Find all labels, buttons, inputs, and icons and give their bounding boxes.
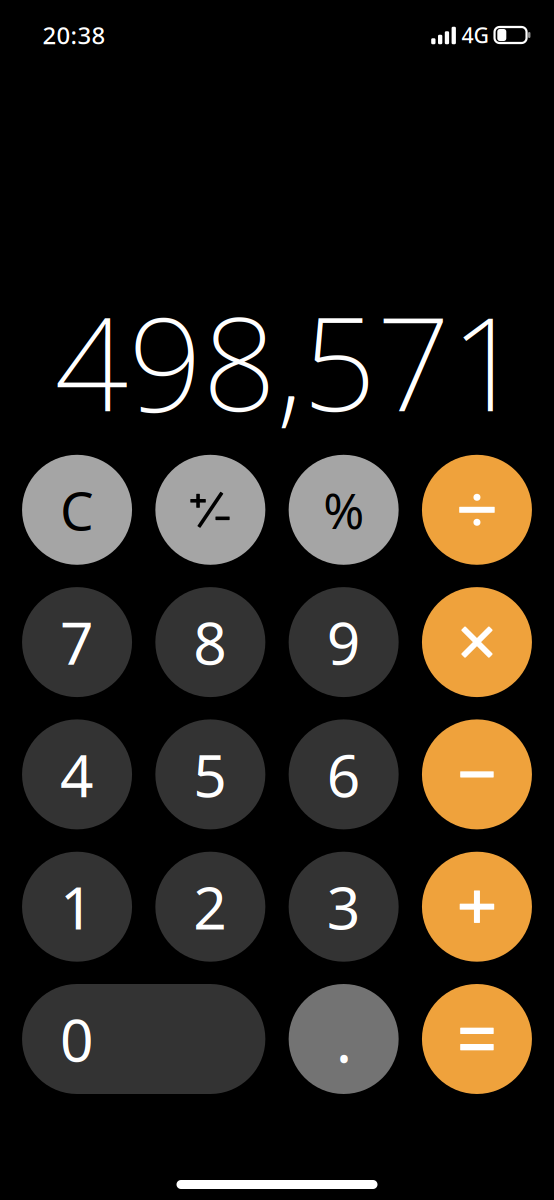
- button[interactable]: Divide: [422, 455, 532, 565]
- staticText: 0: [60, 1000, 94, 1078]
- staticText: 3: [327, 868, 361, 946]
- button[interactable]: 7: [22, 587, 132, 697]
- button[interactable]: Plus minus: [155, 455, 265, 565]
- staticText: 498,571: [54, 275, 524, 447]
- button[interactable]: 3: [289, 852, 399, 962]
- staticText: 7: [60, 603, 94, 681]
- button[interactable]: C: [22, 455, 132, 565]
- button[interactable]: 0: [22, 984, 265, 1094]
- staticText: 4: [60, 735, 94, 813]
- button[interactable]: 6: [289, 719, 399, 829]
- staticText: 2: [193, 868, 227, 946]
- staticText: 6: [327, 735, 361, 813]
- button[interactable]: .: [289, 984, 399, 1094]
- staticText: .: [336, 998, 352, 1080]
- staticText: 8: [193, 603, 227, 681]
- button[interactable]: 2: [155, 852, 265, 962]
- staticText: 9: [327, 603, 361, 681]
- button[interactable]: 8: [155, 587, 265, 697]
- button[interactable]: 9: [289, 587, 399, 697]
- staticText: 4G: [462, 21, 490, 49]
- button[interactable]: 4: [22, 719, 132, 829]
- button[interactable]: Subtract: [422, 719, 532, 829]
- button[interactable]: 1: [22, 852, 132, 962]
- button[interactable]: %: [289, 455, 399, 565]
- staticText: 5: [193, 735, 227, 813]
- button[interactable]: Equals: [422, 984, 532, 1094]
- staticText: 20:38: [42, 19, 105, 51]
- button[interactable]: Add: [422, 852, 532, 962]
- staticText: C: [60, 474, 94, 545]
- button[interactable]: 5: [155, 719, 265, 829]
- staticText: 1: [60, 868, 94, 946]
- button[interactable]: Multiply: [422, 587, 532, 697]
- staticText: %: [323, 477, 364, 542]
